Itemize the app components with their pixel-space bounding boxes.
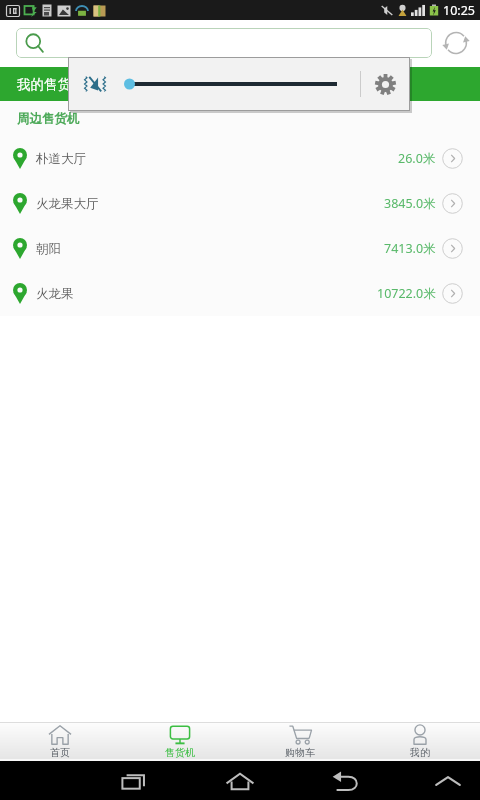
button[interactable]: Mute xyxy=(83,71,107,97)
button[interactable]: 朝阳 xyxy=(0,226,480,271)
staticText: 10:25 xyxy=(443,2,475,19)
button[interactable]: 火龙果 xyxy=(0,271,480,316)
staticText: 火龙果 xyxy=(36,286,74,302)
staticText: 首页 xyxy=(50,746,70,759)
button[interactable]: 首页 xyxy=(0,722,120,761)
staticText: 3845.0米 xyxy=(384,195,436,212)
button[interactable]: 我的 xyxy=(360,722,480,761)
button[interactable]: 火龙果大厅 xyxy=(0,181,480,226)
button[interactable] xyxy=(16,28,432,58)
staticText: 售货机 xyxy=(165,746,195,759)
button[interactable]: Back xyxy=(320,761,370,800)
staticText: 周边售货机 xyxy=(17,111,80,127)
staticText: 购物车 xyxy=(285,746,315,759)
staticText: 朴道大厅 xyxy=(36,151,86,167)
button[interactable]: Recents xyxy=(110,761,160,800)
staticText: 10722.0米 xyxy=(377,285,436,302)
staticText: 我的售货机 xyxy=(17,76,85,93)
button[interactable]: 朴道大厅 xyxy=(0,136,480,181)
button[interactable] xyxy=(128,76,338,92)
button[interactable]: 我的售货机 xyxy=(0,67,480,101)
button[interactable]: Home xyxy=(215,761,265,800)
staticText: 我的 xyxy=(410,746,430,759)
button[interactable]: Sound settings xyxy=(361,57,410,111)
staticText: 火龙果大厅 xyxy=(36,196,99,212)
button[interactable]: 购物车 xyxy=(240,722,360,761)
staticText: 26.0米 xyxy=(398,150,436,167)
button[interactable]: 售货机 xyxy=(120,722,240,761)
staticText: 朝阳 xyxy=(36,241,61,257)
button[interactable]: Expand xyxy=(423,761,473,800)
button[interactable]: Refresh xyxy=(432,28,480,58)
staticText: 7413.0米 xyxy=(384,240,436,257)
